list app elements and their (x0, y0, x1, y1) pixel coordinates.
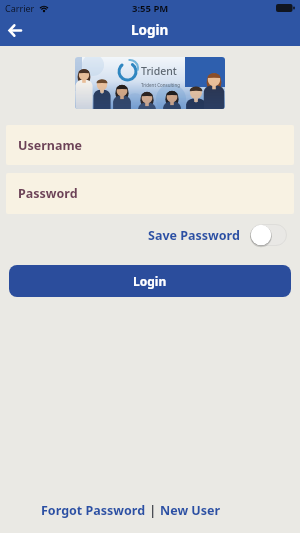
staticText: Trident Consulting (141, 82, 180, 88)
button[interactable]: Password (6, 173, 294, 214)
staticText: 3:55 PM (132, 2, 169, 15)
staticText: | (146, 502, 160, 519)
button[interactable]: Username (6, 125, 294, 165)
button[interactable] (4, 19, 26, 41)
staticText: Carrier (5, 2, 35, 14)
staticText: Username (18, 137, 83, 154)
button[interactable] (250, 224, 287, 246)
button[interactable]: Login (9, 265, 291, 297)
staticText: Login (131, 21, 169, 39)
staticText: Password (18, 185, 78, 202)
button[interactable]: New User (160, 502, 221, 519)
staticText: New User (160, 502, 221, 519)
staticText: Trident (141, 64, 177, 78)
button[interactable]: Forgot Password (41, 502, 146, 519)
staticText: Login (133, 273, 167, 289)
staticText: Save Password (148, 227, 240, 244)
staticText: Forgot Password (41, 502, 146, 519)
